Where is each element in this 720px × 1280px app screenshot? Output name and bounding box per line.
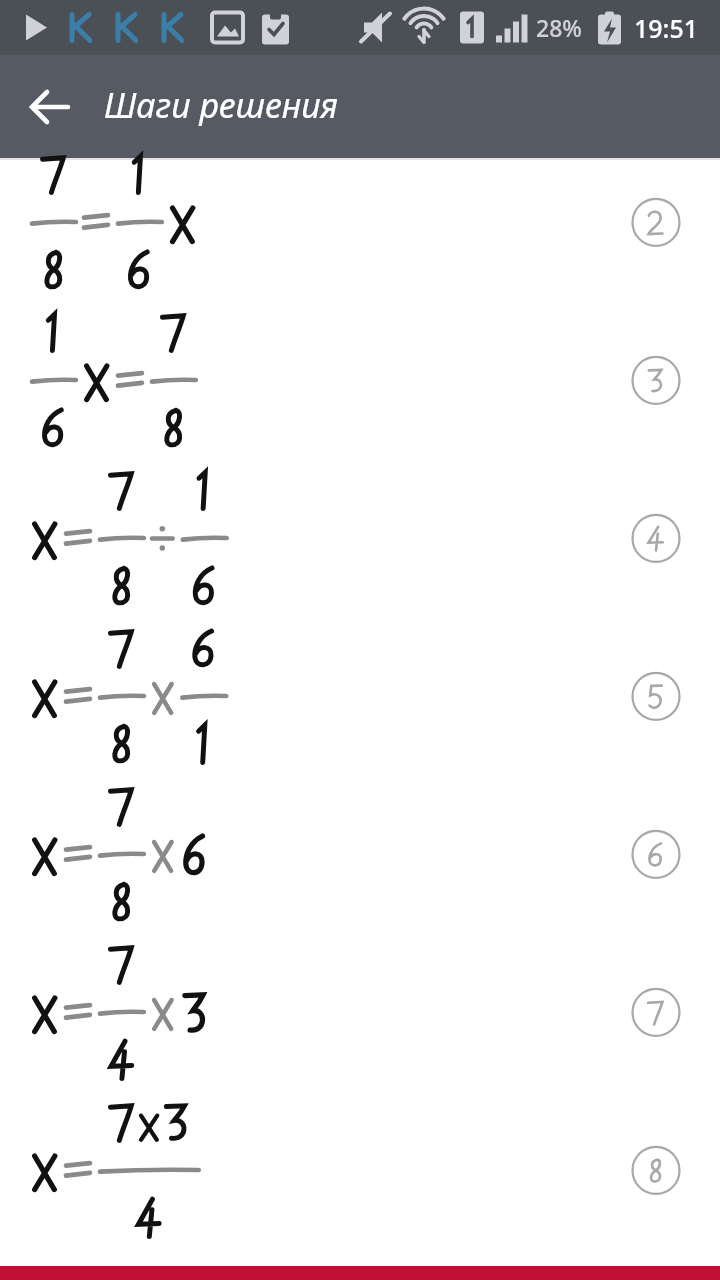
button[interactable] (0, 950, 720, 1108)
button[interactable] (0, 634, 720, 792)
button[interactable] (0, 476, 720, 634)
button[interactable] (0, 792, 720, 950)
staticText: 28% (536, 12, 582, 43)
button[interactable] (0, 1108, 720, 1266)
staticText: Шаги решения (104, 82, 338, 128)
button[interactable]: Back (14, 71, 86, 143)
button[interactable] (0, 318, 720, 476)
staticText: 19:51 (634, 11, 699, 45)
button[interactable] (0, 160, 720, 318)
